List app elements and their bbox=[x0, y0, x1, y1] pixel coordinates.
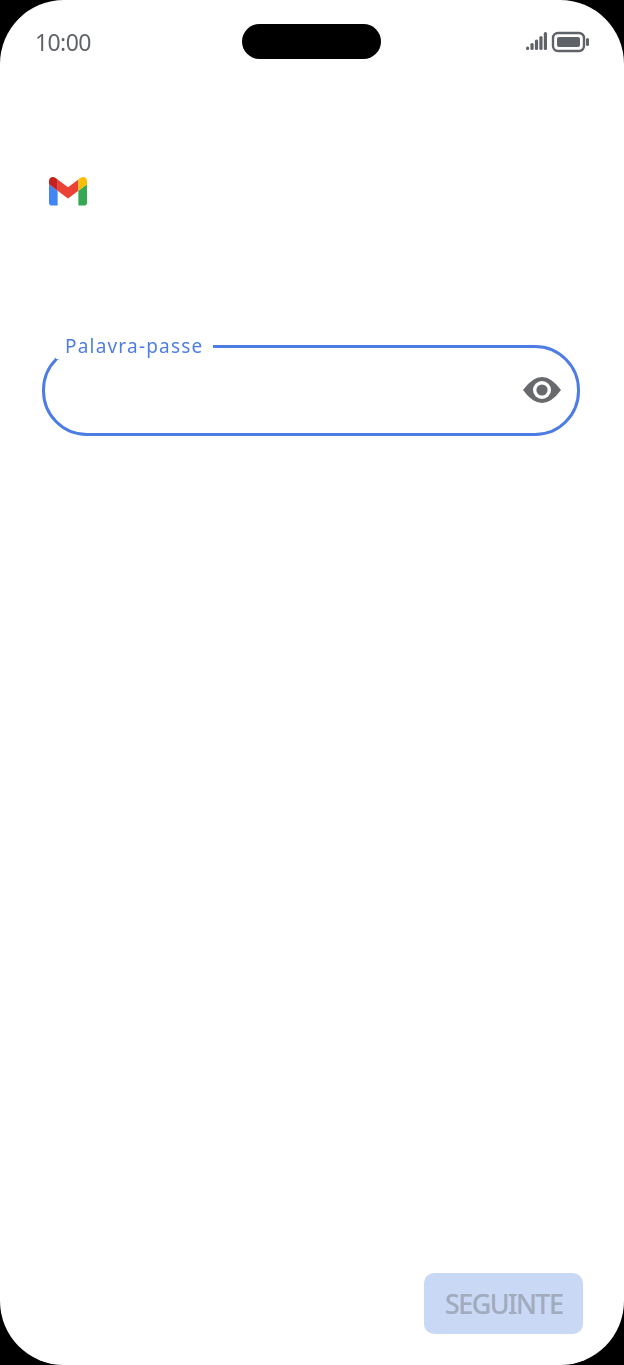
staticText: 10:00 bbox=[35, 26, 91, 57]
button[interactable] bbox=[42, 345, 580, 436]
button[interactable]: SEGUINTE bbox=[424, 1273, 583, 1334]
staticText: SEGUINTE bbox=[445, 1285, 563, 1322]
button[interactable] bbox=[523, 376, 561, 404]
staticText: Palavra-passe bbox=[65, 333, 204, 359]
